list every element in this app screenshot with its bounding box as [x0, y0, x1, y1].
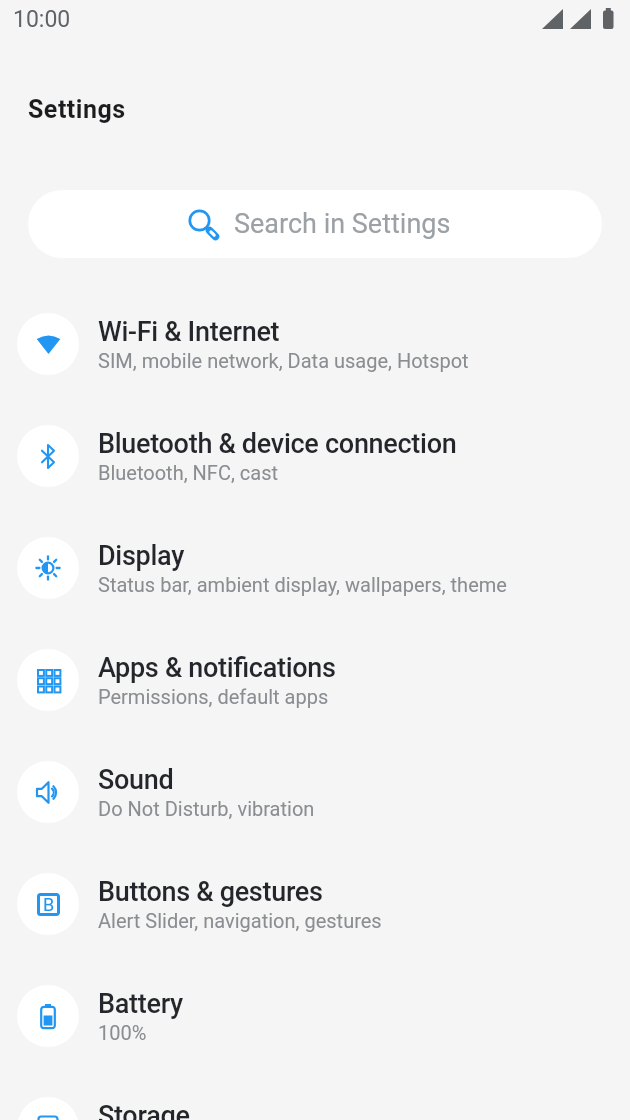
staticText: 10:00: [13, 6, 71, 33]
staticText: Buttons & gestures: [98, 876, 323, 908]
button[interactable]: Wi-Fi & Internet: [0, 288, 630, 400]
staticText: Apps & notifications: [98, 652, 336, 684]
staticText: 100%: [98, 1021, 147, 1044]
button[interactable]: Display: [0, 512, 630, 624]
staticText: Search in Settings: [234, 208, 451, 240]
staticText: Status bar, ambient display, wallpapers,…: [98, 573, 507, 596]
button[interactable]: Apps & notifications: [0, 624, 630, 736]
button[interactable]: Search in Settings: [28, 190, 602, 258]
staticText: Bluetooth, NFC, cast: [98, 461, 279, 484]
button[interactable]: Battery: [0, 960, 630, 1072]
staticText: Alert Slider, navigation, gestures: [98, 909, 382, 932]
staticText: Settings: [28, 95, 126, 124]
staticText: Permissions, default apps: [98, 685, 329, 708]
button[interactable]: Storage: [0, 1072, 630, 1120]
staticText: Bluetooth & device connection: [98, 428, 457, 460]
staticText: Display: [98, 540, 185, 572]
button[interactable]: B: [0, 848, 630, 960]
staticText: Sound: [98, 764, 174, 796]
staticText: SIM, mobile network, Data usage, Hotspot: [98, 349, 469, 372]
staticText: B: [43, 894, 55, 915]
staticText: Wi-Fi & Internet: [98, 316, 280, 348]
staticText: Storage: [98, 1100, 190, 1120]
staticText: Battery: [98, 988, 183, 1020]
button[interactable]: Bluetooth & device connection: [0, 400, 630, 512]
staticText: Do Not Disturb, vibration: [98, 797, 315, 820]
button[interactable]: Sound: [0, 736, 630, 848]
